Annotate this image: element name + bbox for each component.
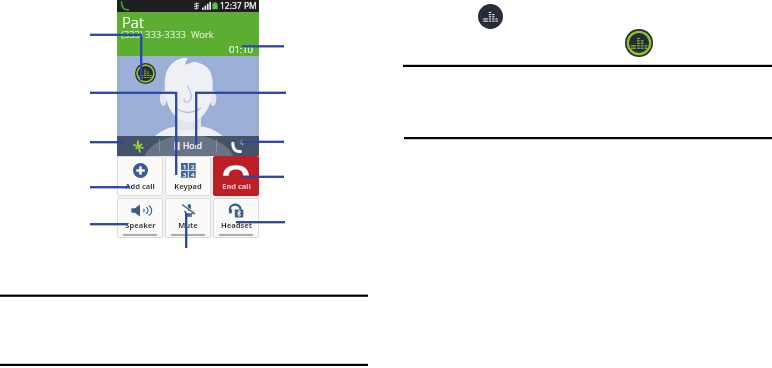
staticText: Headset xyxy=(221,220,252,230)
staticText: Speaker xyxy=(125,220,156,230)
staticText: Pat xyxy=(122,12,144,32)
staticText: 01:10 xyxy=(229,43,254,56)
button[interactable]: Adapt Sound on xyxy=(625,29,653,57)
button[interactable]: Add call xyxy=(217,136,259,156)
staticText: End call xyxy=(222,181,251,191)
button[interactable]: Adapt Sound off xyxy=(478,4,503,29)
button[interactable]: 1 xyxy=(165,156,211,196)
button[interactable]: Noise reduction xyxy=(117,136,159,156)
staticText: Add call xyxy=(125,181,155,191)
staticText: 1 xyxy=(183,163,187,170)
staticText: 3 xyxy=(183,171,187,178)
button[interactable]: Add call xyxy=(117,156,163,196)
staticText: 12:37 PM xyxy=(220,0,257,12)
staticText: (333) 333-3333 Work xyxy=(121,28,214,41)
button[interactable]: Speaker xyxy=(117,198,163,238)
button[interactable]: Adapt Sound xyxy=(135,63,156,84)
staticText: Mute xyxy=(178,220,198,230)
button[interactable]: Headset xyxy=(213,198,259,238)
button[interactable]: Hold xyxy=(160,136,216,156)
staticText: 2 xyxy=(191,163,195,170)
staticText: 4 xyxy=(191,171,195,178)
staticText: Keypad xyxy=(174,181,202,191)
button[interactable]: Mute xyxy=(165,198,211,238)
staticText: Hold xyxy=(183,140,202,152)
button[interactable]: End call xyxy=(213,156,259,196)
